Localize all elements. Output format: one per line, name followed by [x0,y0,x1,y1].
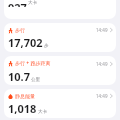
staticText: 步行 [15,27,25,33]
staticText: 14:49 [96,93,108,99]
button[interactable]: 查看详情 [110,27,113,33]
button[interactable]: 静息能量 [4,89,116,118]
staticText: 14:49 [96,61,108,67]
staticText: 14:49 [96,27,108,33]
staticText: 步 [44,43,49,49]
staticText: 公里 [31,77,40,83]
button[interactable]: 步行 [4,23,116,52]
staticText: 步行 + 跑步距离 [15,60,51,67]
button[interactable]: 步行 + 跑步距离 [4,56,116,85]
staticText: 1,018 [8,101,37,116]
staticText: 静息能量 [15,93,35,99]
button[interactable]: 查看详情 [110,61,113,67]
staticText: 17,702 [8,35,43,50]
staticText: 10.7 [8,69,30,84]
staticText: 927 [8,0,27,7]
button[interactable]: 活动能量 [4,0,116,19]
button[interactable]: 查看详情 [110,93,113,99]
staticText: 大卡 [28,0,37,6]
staticText: 大卡 [38,109,47,115]
